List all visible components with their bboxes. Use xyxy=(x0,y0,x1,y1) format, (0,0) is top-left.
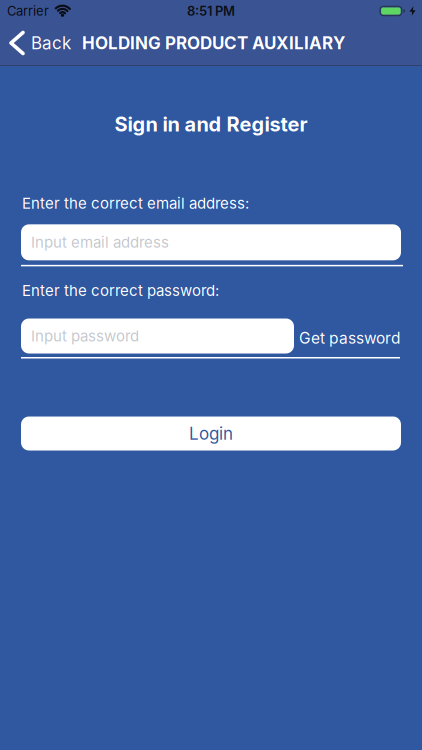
staticText: Enter the correct email address: xyxy=(22,194,249,212)
staticText: Sign in and Register xyxy=(114,112,307,136)
staticText: Enter the correct password: xyxy=(22,281,219,299)
button[interactable]: Input email address xyxy=(21,224,401,260)
staticText: Carrier xyxy=(7,3,49,19)
staticText: Back xyxy=(31,33,71,53)
button[interactable]: Input password xyxy=(21,318,294,353)
staticText: Login xyxy=(189,423,233,444)
staticText: Input email address xyxy=(31,233,169,251)
button[interactable]: Login xyxy=(21,416,401,450)
button[interactable]: Get password xyxy=(299,325,400,347)
staticText: HOLDING PRODUCT AUXILIARY xyxy=(82,33,345,53)
staticText: 8:51 PM xyxy=(187,3,235,19)
button[interactable]: Back xyxy=(0,32,71,53)
staticText: Input password xyxy=(31,327,139,345)
staticText: Get password xyxy=(299,329,400,347)
